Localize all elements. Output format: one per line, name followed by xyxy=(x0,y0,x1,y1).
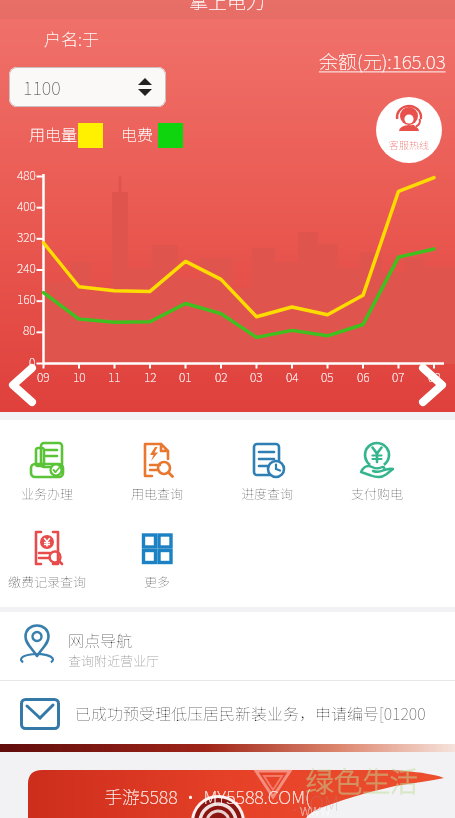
staticText: 客服热线 xyxy=(389,137,429,151)
staticText: 05 xyxy=(321,368,334,385)
staticText: 01 xyxy=(179,368,192,385)
staticText: 09 xyxy=(37,368,50,385)
button[interactable] xyxy=(0,752,455,818)
button[interactable]: 更多 xyxy=(102,529,212,591)
staticText: 缴费记录查询 xyxy=(8,572,87,591)
staticText: 08 xyxy=(428,368,441,385)
staticText: 绿色生活 xyxy=(306,760,419,801)
button[interactable]: 业务办理 xyxy=(0,441,102,503)
button[interactable]: 用电查询 xyxy=(102,441,212,503)
staticText: .COM xyxy=(293,788,340,817)
staticText: 手游5588 · MY5588.COM( xyxy=(104,783,311,809)
button[interactable]: 客服热线 xyxy=(376,97,442,163)
staticText: 电费 xyxy=(121,122,154,145)
staticText: 02 xyxy=(215,368,228,385)
button[interactable]: 网点导航 xyxy=(0,612,455,680)
staticText: 支付购电 xyxy=(351,484,404,503)
staticText: 240 xyxy=(17,259,36,276)
staticText: 0 xyxy=(29,353,36,370)
staticText: 查询附近营业厅 xyxy=(68,651,160,670)
staticText: 03 xyxy=(250,368,263,385)
staticText: 80 xyxy=(23,321,36,338)
staticText: 1100 xyxy=(23,74,61,100)
button[interactable]: 1100 xyxy=(9,67,166,107)
staticText: 用电查询 xyxy=(131,484,184,503)
staticText: 用电量 xyxy=(29,122,78,145)
button[interactable]: 已成功预受理低压居民新装业务，申请编号[01200 xyxy=(0,681,455,744)
staticText: 320 xyxy=(17,228,36,245)
button[interactable]: 支付购电 xyxy=(322,441,432,503)
staticText: 11 xyxy=(108,368,121,385)
staticText: 进度查询 xyxy=(241,484,294,503)
staticText: 04 xyxy=(286,368,299,385)
staticText: 06 xyxy=(357,368,370,385)
staticText: 业务办理 xyxy=(21,484,74,503)
staticText: 10 xyxy=(73,368,86,385)
staticText: 掌上电力 xyxy=(189,0,266,15)
staticText: 更多 xyxy=(144,572,171,591)
staticText: 余额(元):165.03 xyxy=(319,47,446,75)
button[interactable]: 缴费记录查询 xyxy=(0,529,102,591)
staticText: 网点导航 xyxy=(68,628,133,651)
staticText: 07 xyxy=(392,368,405,385)
staticText: 160 xyxy=(17,290,36,307)
button[interactable]: 进度查询 xyxy=(212,441,322,503)
staticText: 12 xyxy=(144,368,157,385)
staticText: 480 xyxy=(17,166,36,183)
staticText: 已成功预受理低压居民新装业务，申请编号[01200 xyxy=(75,701,426,724)
staticText: 400 xyxy=(17,197,36,214)
staticText: 户名:于 xyxy=(44,26,99,51)
staticText: WWW. xyxy=(300,802,333,818)
